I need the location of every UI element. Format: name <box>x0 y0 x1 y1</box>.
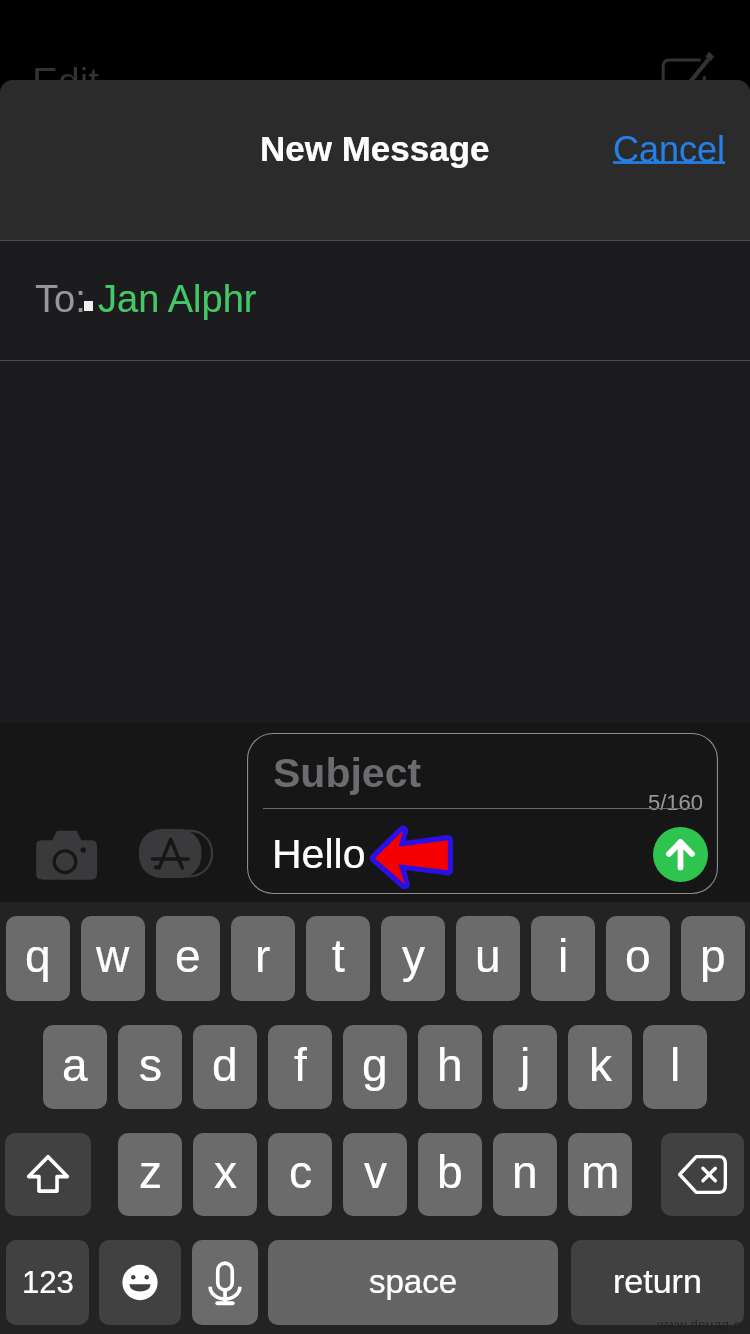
staticText: 123 <box>22 1265 74 1300</box>
staticText: b <box>437 1146 463 1197</box>
staticText: return <box>613 1262 702 1300</box>
button[interactable]: n <box>493 1133 557 1216</box>
button[interactable]: w <box>81 916 145 1001</box>
staticText: o <box>625 930 651 981</box>
button[interactable]: f <box>268 1025 332 1109</box>
button[interactable]: x <box>193 1133 257 1216</box>
staticText: f <box>294 1039 307 1090</box>
button[interactable]: h <box>418 1025 482 1109</box>
staticText: g <box>362 1039 388 1090</box>
button[interactable]: b <box>418 1133 482 1216</box>
staticText: y <box>402 930 425 981</box>
button[interactable]: i <box>531 916 595 1001</box>
staticText: i <box>558 930 569 981</box>
staticText: j <box>520 1039 531 1090</box>
button[interactable]: u <box>456 916 520 1001</box>
button[interactable]: j <box>493 1025 557 1109</box>
staticText: Hello <box>272 831 366 877</box>
button[interactable]: q <box>6 916 70 1001</box>
button[interactable]: p <box>681 916 745 1001</box>
staticText: m <box>581 1146 620 1197</box>
staticText: p <box>700 930 726 981</box>
staticText: 5/160 <box>648 790 704 815</box>
button[interactable]: a <box>43 1025 107 1109</box>
staticText: s <box>139 1039 162 1090</box>
button[interactable]: r <box>231 916 295 1001</box>
staticText: l <box>670 1039 681 1090</box>
button[interactable]: Subject <box>247 733 718 894</box>
staticText: u <box>475 930 501 981</box>
staticText: v <box>364 1146 387 1197</box>
staticText: Edit <box>32 60 100 104</box>
button[interactable]: s <box>118 1025 182 1109</box>
staticText: e <box>175 930 201 981</box>
staticText: Subject <box>273 750 422 796</box>
button[interactable]: Shift <box>5 1133 91 1216</box>
button[interactable]: z <box>118 1133 182 1216</box>
button[interactable]: g <box>343 1025 407 1109</box>
button[interactable]: t <box>306 916 370 1001</box>
button[interactable]: m <box>568 1133 632 1216</box>
staticText: h <box>437 1039 463 1090</box>
staticText: www.deuaq.com <box>657 1317 750 1332</box>
staticText: Cancel <box>613 129 726 169</box>
button[interactable]: Numbers <box>6 1240 89 1325</box>
staticText: z <box>139 1146 162 1197</box>
staticText: To: <box>35 278 86 320</box>
staticText: k <box>589 1039 612 1090</box>
button[interactable]: k <box>568 1025 632 1109</box>
staticText: t <box>332 930 345 981</box>
button[interactable]: Send <box>653 827 708 882</box>
button[interactable]: l <box>643 1025 707 1109</box>
staticText: a <box>62 1039 88 1090</box>
staticText: New Message <box>260 129 490 168</box>
button[interactable]: To: <box>0 241 750 360</box>
button[interactable]: Cancel <box>593 119 750 179</box>
button[interactable]: y <box>381 916 445 1001</box>
button[interactable]: Apps <box>139 829 212 878</box>
staticText: w <box>96 930 130 981</box>
button[interactable]: space <box>268 1240 558 1325</box>
staticText: c <box>289 1146 312 1197</box>
button[interactable]: Emoji <box>99 1240 181 1325</box>
staticText: Jan Alphr <box>98 278 257 320</box>
staticText: r <box>255 930 271 981</box>
button[interactable]: Backspace <box>661 1133 744 1216</box>
staticText: x <box>214 1146 237 1197</box>
button[interactable]: d <box>193 1025 257 1109</box>
staticText: n <box>512 1146 538 1197</box>
button[interactable]: Camera <box>33 829 97 885</box>
staticText: q <box>25 930 51 981</box>
staticText: space <box>369 1263 458 1300</box>
button[interactable]: e <box>156 916 220 1001</box>
button[interactable]: c <box>268 1133 332 1216</box>
staticText: d <box>212 1039 238 1090</box>
button[interactable]: Dictate <box>192 1240 258 1325</box>
button[interactable]: return <box>571 1240 744 1325</box>
button[interactable]: o <box>606 916 670 1001</box>
button[interactable]: v <box>343 1133 407 1216</box>
